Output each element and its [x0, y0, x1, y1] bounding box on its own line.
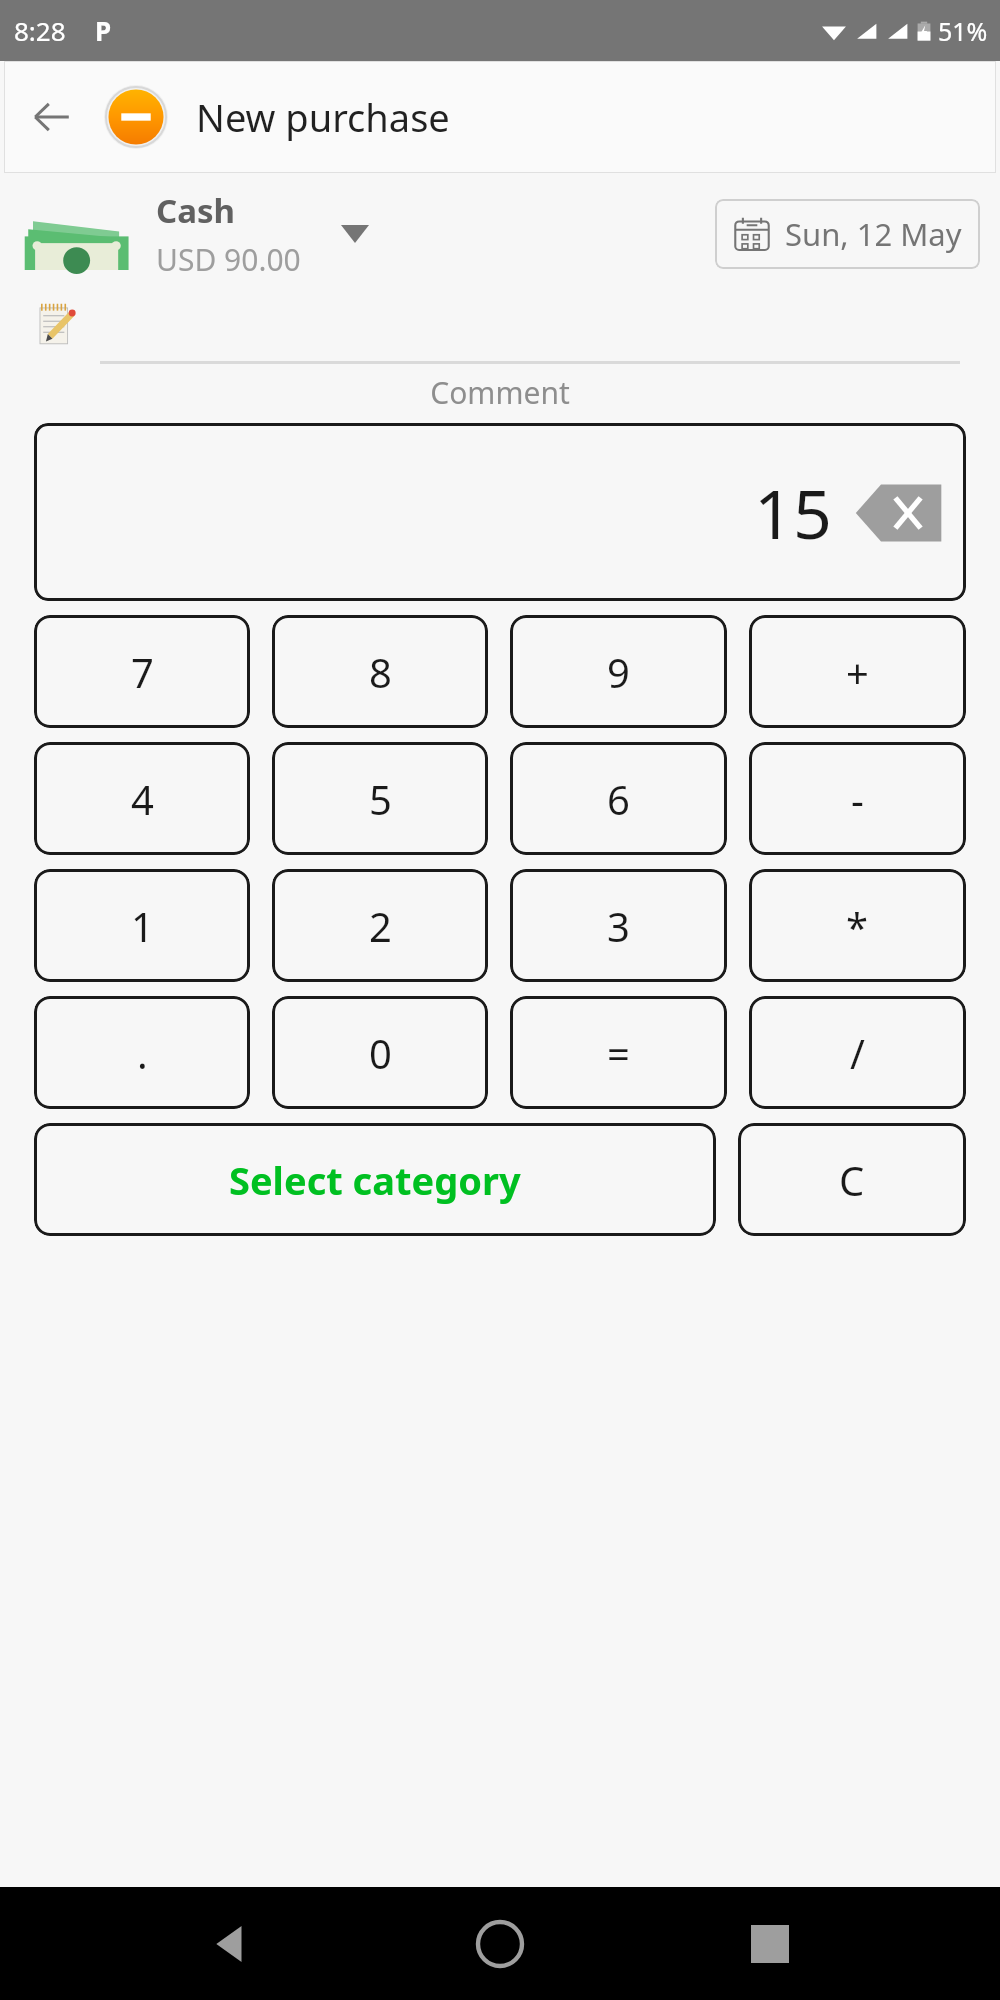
button[interactable]: 6 — [510, 742, 727, 855]
button[interactable]: Back — [190, 1904, 270, 1984]
button[interactable]: 2 — [272, 869, 488, 982]
button[interactable]: Cash — [20, 173, 703, 295]
staticText: . — [137, 1026, 148, 1080]
staticText: P — [95, 13, 112, 48]
staticText: 5 — [369, 772, 392, 826]
staticText: 3 — [607, 899, 630, 953]
button[interactable]: = — [510, 996, 727, 1109]
button[interactable]: * — [749, 869, 966, 982]
staticText: + — [846, 645, 869, 699]
button[interactable]: Recents — [730, 1904, 810, 1984]
button[interactable]: 1 — [34, 869, 250, 982]
staticText: 51% — [938, 14, 988, 48]
staticText: 6 — [607, 772, 630, 826]
staticText: New purchase — [196, 91, 450, 143]
staticText: 8 — [369, 645, 392, 699]
staticText: USD 90.00 — [156, 239, 301, 280]
staticText: 15 — [754, 466, 832, 559]
staticText: 7 — [131, 645, 154, 699]
button[interactable]: C — [738, 1123, 966, 1236]
button[interactable]: 7 — [34, 615, 250, 728]
button[interactable]: Select category — [34, 1123, 716, 1236]
button[interactable]: 4 — [34, 742, 250, 855]
staticText: 4 — [131, 772, 154, 826]
button[interactable]: . — [34, 996, 250, 1109]
staticText: = — [607, 1026, 630, 1080]
button[interactable]: - — [749, 742, 966, 855]
button[interactable]: 5 — [272, 742, 488, 855]
staticText: * — [846, 899, 869, 953]
button[interactable]: Backspace — [854, 479, 944, 547]
button[interactable]: Sun, 12 May — [715, 199, 980, 269]
staticText: 9 — [607, 645, 630, 699]
staticText: 2 — [369, 899, 392, 953]
staticText: Sun, 12 May — [785, 213, 962, 255]
button[interactable]: / — [749, 996, 966, 1109]
button[interactable]: 9 — [510, 615, 727, 728]
staticText: 8:28 — [14, 13, 66, 48]
button[interactable]: 8 — [272, 615, 488, 728]
staticText: - — [851, 772, 864, 826]
staticText: C — [839, 1153, 865, 1207]
button[interactable]: Home — [460, 1904, 540, 1984]
staticText: 0 — [369, 1026, 392, 1080]
staticText: Select category — [229, 1154, 521, 1206]
button[interactable]: + — [749, 615, 966, 728]
button[interactable]: Back — [22, 87, 82, 147]
staticText: Comment — [0, 372, 1000, 413]
button[interactable]: 15 — [34, 423, 966, 601]
button[interactable]: 0 — [272, 996, 488, 1109]
staticText: 1 — [131, 899, 154, 953]
staticText: / — [850, 1026, 865, 1080]
staticText: Cash — [156, 188, 235, 233]
button[interactable]: 3 — [510, 869, 727, 982]
